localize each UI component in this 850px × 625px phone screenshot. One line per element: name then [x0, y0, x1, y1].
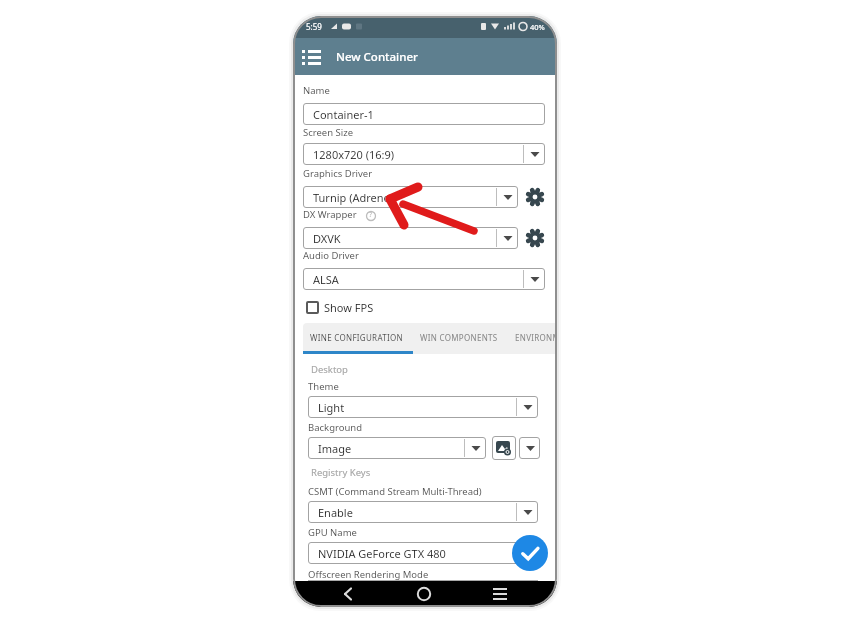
- button[interactable]: Container-1: [303, 103, 545, 125]
- staticText: Screen Size: [303, 126, 354, 139]
- staticText: GPU Name: [308, 526, 357, 539]
- button[interactable]: WIN COMPONENTS: [420, 332, 498, 343]
- staticText: Graphics Driver: [303, 167, 373, 180]
- staticText: Turnip (Adreno): [313, 190, 394, 205]
- staticText: NVIDIA GeForce GTX 480: [318, 546, 446, 561]
- staticText: 40%: [530, 22, 545, 32]
- staticText: DX Wrapper: [303, 208, 357, 221]
- button[interactable]: [512, 535, 548, 571]
- staticText: Background: [308, 421, 363, 434]
- staticText: ALSA: [313, 272, 339, 287]
- staticText: 1280x720 (16:9): [313, 147, 395, 162]
- button[interactable]: ENVIRONM: [515, 332, 557, 343]
- staticText: Audio Driver: [303, 249, 359, 262]
- button[interactable]: 1280x720 (16:9): [303, 143, 545, 165]
- staticText: Name: [303, 84, 330, 97]
- button[interactable]: [519, 437, 540, 459]
- button[interactable]: [306, 301, 319, 314]
- button[interactable]: [526, 188, 544, 206]
- button[interactable]: NVIDIA GeForce GTX 480: [308, 542, 538, 564]
- staticText: Theme: [308, 380, 339, 393]
- button[interactable]: Enable: [308, 501, 538, 523]
- staticText: Container-1: [313, 107, 374, 122]
- button[interactable]: Image: [308, 437, 486, 459]
- staticText: Offscreen Rendering Mode: [308, 568, 429, 581]
- button[interactable]: Turnip (Adreno): [303, 186, 518, 208]
- staticText: DXVK: [313, 231, 341, 246]
- staticText: New Container: [336, 49, 418, 65]
- staticText: Light: [318, 400, 345, 415]
- button[interactable]: [302, 48, 321, 65]
- button[interactable]: DXVK: [303, 227, 518, 249]
- button[interactable]: [526, 229, 544, 247]
- button[interactable]: WINE CONFIGURATION: [310, 332, 403, 343]
- staticText: Show FPS: [324, 300, 374, 315]
- button[interactable]: [492, 436, 516, 460]
- button[interactable]: ALSA: [303, 268, 545, 290]
- staticText: Enable: [318, 505, 353, 520]
- staticText: CSMT (Command Stream Multi-Thread): [308, 485, 482, 498]
- staticText: ?: [369, 210, 373, 220]
- button[interactable]: Light: [308, 396, 538, 418]
- staticText: Image: [318, 441, 352, 456]
- staticText: 5:59: [306, 21, 322, 32]
- staticText: Desktop: [311, 363, 348, 376]
- staticText: Registry Keys: [311, 466, 371, 479]
